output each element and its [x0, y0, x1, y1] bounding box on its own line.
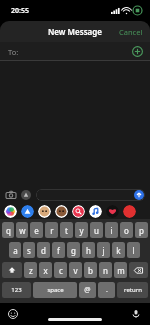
staticText: x — [43, 265, 48, 276]
button[interactable]: Dictation — [131, 309, 141, 319]
button[interactable]: @ — [79, 282, 96, 298]
button[interactable]: r — [45, 222, 58, 238]
button[interactable]: Emoji — [8, 309, 18, 319]
button[interactable]: space — [33, 282, 77, 298]
button[interactable]: a — [9, 242, 21, 258]
button[interactable]: . — [98, 282, 115, 298]
button[interactable]: n — [99, 262, 112, 278]
button[interactable]: Shift — [2, 262, 22, 278]
staticText: j — [102, 245, 105, 256]
button[interactable]: j — [97, 242, 110, 258]
button[interactable]: y — [75, 222, 88, 238]
button[interactable]: k — [112, 242, 125, 258]
button[interactable]: l — [127, 242, 140, 258]
staticText: To: — [8, 47, 19, 57]
staticText: b — [88, 265, 93, 276]
staticText: s — [27, 245, 31, 256]
button[interactable]: Send — [36, 189, 145, 201]
staticText: Cancel — [119, 27, 143, 37]
staticText: h — [86, 245, 91, 256]
button[interactable]: App 1 — [21, 205, 34, 218]
staticText: d — [41, 245, 46, 256]
button[interactable]: g — [67, 242, 80, 258]
button[interactable]: c — [54, 262, 67, 278]
button[interactable]: q — [2, 222, 14, 238]
button[interactable]: v — [69, 262, 82, 278]
staticText: i — [110, 225, 113, 236]
staticText: g — [71, 245, 76, 256]
button[interactable]: p — [135, 222, 148, 238]
button[interactable]: i — [105, 222, 118, 238]
staticText: p — [139, 225, 144, 236]
button[interactable]: Send — [134, 190, 144, 200]
button[interactable]: App 6 — [106, 205, 119, 218]
staticText: f — [57, 245, 60, 256]
button[interactable]: App 2 — [38, 205, 51, 218]
button[interactable]: To: — [0, 42, 150, 61]
button[interactable]: x — [39, 262, 52, 278]
staticText: k — [116, 245, 121, 256]
staticText: return — [124, 286, 142, 294]
staticText: New Message — [48, 26, 102, 37]
button[interactable]: t — [60, 222, 73, 238]
button[interactable]: b — [84, 262, 97, 278]
button[interactable]: App 5 — [89, 205, 102, 218]
button[interactable]: Apps — [20, 189, 32, 201]
button[interactable]: s — [23, 242, 35, 258]
staticText: c — [59, 265, 63, 276]
staticText: @ — [84, 285, 91, 295]
button[interactable]: u — [90, 222, 103, 238]
staticText: q — [6, 225, 11, 236]
staticText: m — [117, 265, 125, 276]
button[interactable]: App 0 — [4, 205, 17, 218]
button[interactable]: h — [82, 242, 95, 258]
staticText: w — [19, 225, 26, 236]
staticText: e — [34, 225, 39, 236]
button[interactable]: return — [117, 282, 148, 298]
staticText: u — [94, 225, 99, 236]
button[interactable]: App 4 — [72, 205, 85, 218]
button[interactable]: Add contact — [132, 46, 143, 57]
staticText: y — [79, 225, 84, 236]
staticText: r — [50, 225, 54, 236]
staticText: a — [13, 245, 18, 256]
staticText: 20:55 — [11, 6, 29, 16]
staticText: o — [124, 225, 129, 236]
staticText: 123 — [11, 286, 22, 294]
button[interactable]: z — [24, 262, 37, 278]
staticText: t — [65, 225, 68, 236]
button[interactable]: m — [114, 262, 127, 278]
staticText: . — [106, 285, 108, 295]
button[interactable]: o — [120, 222, 133, 238]
button[interactable]: w — [16, 222, 28, 238]
button[interactable]: d — [37, 242, 50, 258]
button[interactable]: Cancel — [112, 23, 150, 41]
button[interactable]: Backspace — [129, 262, 148, 278]
staticText: space — [47, 286, 64, 294]
button[interactable]: App 3 — [55, 205, 68, 218]
button[interactable]: e — [30, 222, 43, 238]
button[interactable]: Camera — [5, 189, 17, 201]
staticText: v — [73, 265, 78, 276]
button[interactable]: 123 — [2, 282, 31, 298]
button[interactable]: f — [52, 242, 65, 258]
staticText: z — [29, 265, 33, 276]
staticText: n — [103, 265, 108, 276]
button[interactable]: App 7 — [123, 205, 136, 218]
staticText: l — [132, 245, 135, 256]
